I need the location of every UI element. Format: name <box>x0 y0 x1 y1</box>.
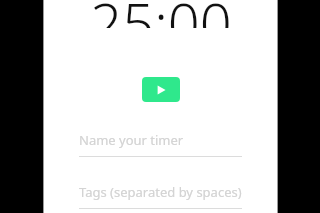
staticText: Tags (separated by spaces) <box>79 183 242 201</box>
button[interactable]: Name your timer <box>79 129 242 157</box>
staticText: 25:00 <box>90 0 232 28</box>
staticText: Name your timer <box>79 131 184 149</box>
button[interactable]: Tags (separated by spaces) <box>79 181 242 209</box>
button[interactable]: Start timer <box>142 77 180 102</box>
